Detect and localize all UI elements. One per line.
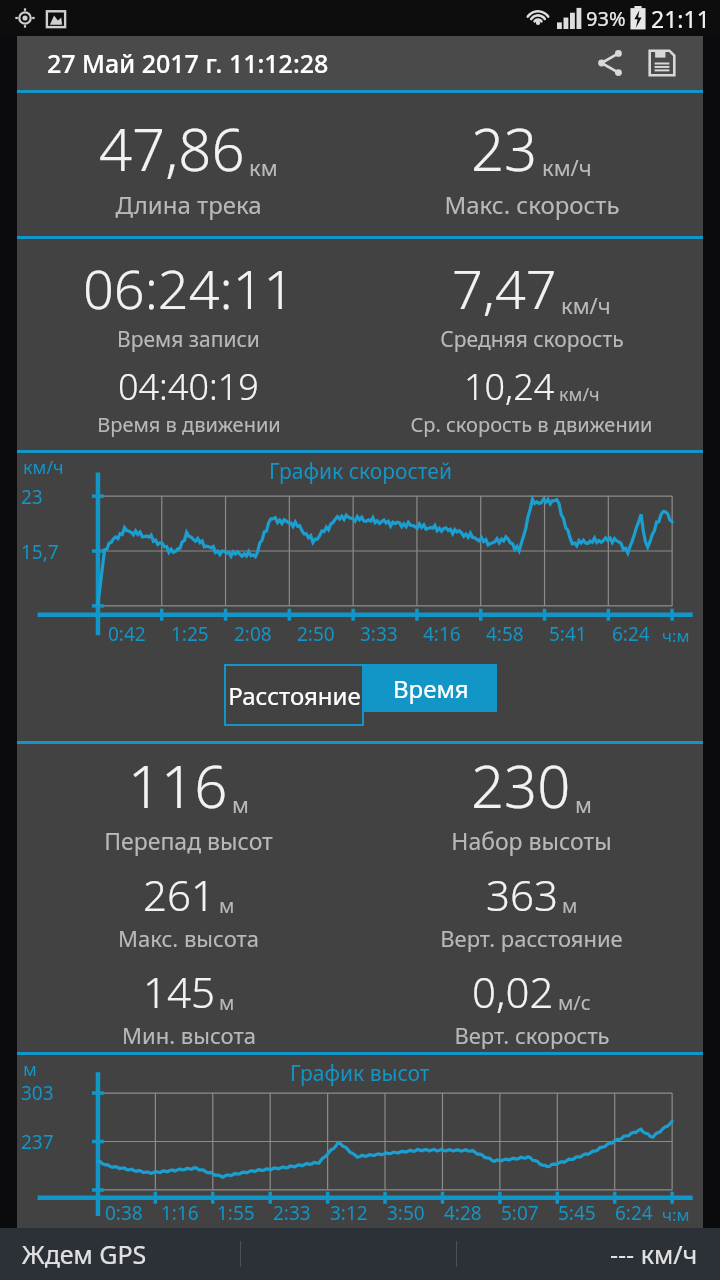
staticText: 23 — [471, 109, 538, 188]
staticText: График высот — [290, 1059, 430, 1088]
staticText: 27 Май 2017 г. 11:12:28 — [47, 46, 329, 80]
staticText: 10,24 — [464, 362, 555, 411]
staticText: 1:55 — [217, 1200, 255, 1226]
staticText: 7,47 — [452, 251, 557, 325]
staticText: 6:24 — [612, 621, 650, 647]
staticText: 3:50 — [387, 1200, 425, 1226]
button[interactable]: Ждем GPS — [0, 1228, 240, 1280]
staticText: 06:24:11 — [83, 251, 295, 325]
staticText: 2:08 — [234, 621, 272, 647]
staticText: --- км/ч — [610, 1237, 698, 1271]
staticText: ч:м — [662, 624, 690, 647]
staticText: 5:07 — [501, 1200, 539, 1226]
staticText: 116 — [128, 746, 228, 825]
staticText: км/ч — [542, 152, 592, 182]
staticText: Перепад высот — [104, 825, 273, 856]
staticText: Мин. высота — [122, 1020, 256, 1050]
staticText: 93% — [586, 5, 626, 32]
staticText: 4:16 — [423, 621, 461, 647]
staticText: Макс. высота — [118, 923, 259, 953]
staticText: 0:38 — [105, 1200, 143, 1226]
staticText: 237 — [21, 1129, 54, 1155]
staticText: км/ч — [23, 455, 64, 480]
staticText: м/с — [558, 989, 591, 1016]
staticText: 47,86 — [99, 109, 245, 188]
staticText: км/ч — [559, 382, 600, 407]
button[interactable]: Share — [587, 40, 633, 86]
staticText: 3:33 — [360, 621, 398, 647]
staticText: Время записи — [117, 325, 260, 354]
staticText: 1:25 — [171, 621, 209, 647]
staticText: 230 — [471, 746, 571, 825]
staticText: м — [232, 789, 249, 819]
staticText: Ждем GPS — [22, 1237, 147, 1271]
staticText: м — [219, 892, 235, 919]
staticText: 15,7 — [21, 539, 59, 565]
staticText: м — [219, 989, 235, 1016]
staticText: 21:11 — [651, 3, 710, 34]
staticText: м — [23, 1057, 37, 1082]
staticText: 0,02 — [472, 963, 554, 1020]
staticText: Верт. скорость — [454, 1020, 610, 1050]
staticText: Макс. скорость — [444, 188, 620, 221]
staticText: 303 — [21, 1080, 54, 1106]
staticText: ч:м — [662, 1203, 690, 1226]
button[interactable]: Расстояние — [224, 664, 364, 726]
staticText: 1:16 — [161, 1200, 199, 1226]
staticText: 5:41 — [549, 621, 587, 647]
staticText: Средняя скорость — [440, 325, 624, 354]
staticText: Время — [393, 672, 469, 705]
staticText: 2:50 — [297, 621, 335, 647]
button[interactable]: --- км/ч — [457, 1228, 720, 1280]
staticText: 4:28 — [444, 1200, 482, 1226]
staticText: м — [562, 892, 578, 919]
staticText: 261 — [143, 866, 215, 923]
staticText: 23 — [21, 484, 43, 510]
button[interactable]: Save — [639, 40, 685, 86]
staticText: 04:40:19 — [118, 362, 259, 411]
staticText: км — [249, 152, 278, 182]
staticText: 6:24 — [615, 1200, 653, 1226]
staticText: 363 — [486, 866, 558, 923]
staticText: График скоростей — [269, 457, 452, 486]
staticText: Набор высоты — [451, 825, 612, 856]
staticText: м — [575, 789, 592, 819]
staticText: км/ч — [561, 290, 611, 320]
staticText: 2:33 — [273, 1200, 311, 1226]
staticText: 145 — [143, 963, 215, 1020]
staticText: Расстояние — [228, 679, 361, 712]
staticText: 4:58 — [486, 621, 524, 647]
staticText: 0:42 — [108, 621, 146, 647]
staticText: Длина трека — [115, 188, 262, 221]
button[interactable]: Время — [364, 664, 497, 712]
staticText: 3:12 — [330, 1200, 368, 1226]
staticText: 5:45 — [558, 1200, 596, 1226]
staticText: Верт. расстояние — [440, 923, 623, 953]
staticText: Ср. скорость в движении — [410, 411, 653, 438]
staticText: Время в движении — [97, 411, 281, 438]
